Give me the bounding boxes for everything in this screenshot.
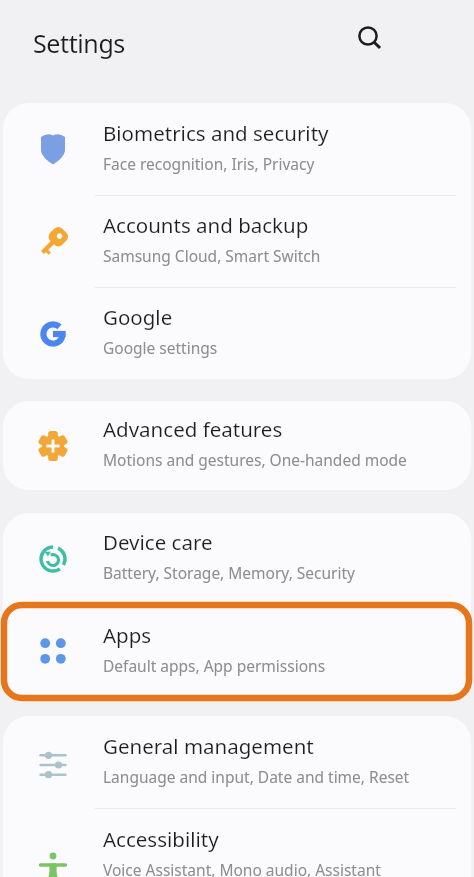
staticText: Accounts and backup xyxy=(103,211,309,239)
button[interactable]: Google xyxy=(3,288,471,379)
staticText: Settings xyxy=(33,26,125,60)
button[interactable]: Apps xyxy=(3,605,471,697)
staticText: Biometrics and security xyxy=(103,119,329,147)
staticText: Apps xyxy=(103,621,152,649)
staticText: Advanced features xyxy=(103,415,283,443)
button[interactable]: Accessibility xyxy=(3,809,471,877)
button[interactable]: Advanced features xyxy=(3,401,471,490)
staticText: Device care xyxy=(103,528,213,556)
staticText: Language and input, Date and time, Reset xyxy=(103,766,410,787)
button[interactable]: Device care xyxy=(3,513,471,604)
staticText: Motions and gestures, One-handed mode xyxy=(103,449,407,470)
staticText: Google settings xyxy=(103,337,218,358)
button[interactable] xyxy=(352,21,386,55)
button[interactable]: Accounts and backup xyxy=(3,196,471,287)
staticText: Voice Assistant, Mono audio, Assistant xyxy=(103,859,381,877)
button[interactable]: Biometrics and security xyxy=(3,103,471,195)
staticText: Accessibility xyxy=(103,825,219,853)
staticText: Face recognition, Iris, Privacy xyxy=(103,153,315,174)
staticText: Battery, Storage, Memory, Security xyxy=(103,562,356,583)
staticText: Samsung Cloud, Smart Switch xyxy=(103,245,321,266)
staticText: Default apps, App permissions xyxy=(103,655,326,676)
button[interactable]: General management xyxy=(3,716,471,808)
staticText: Google xyxy=(103,303,173,331)
staticText: General management xyxy=(103,732,314,760)
